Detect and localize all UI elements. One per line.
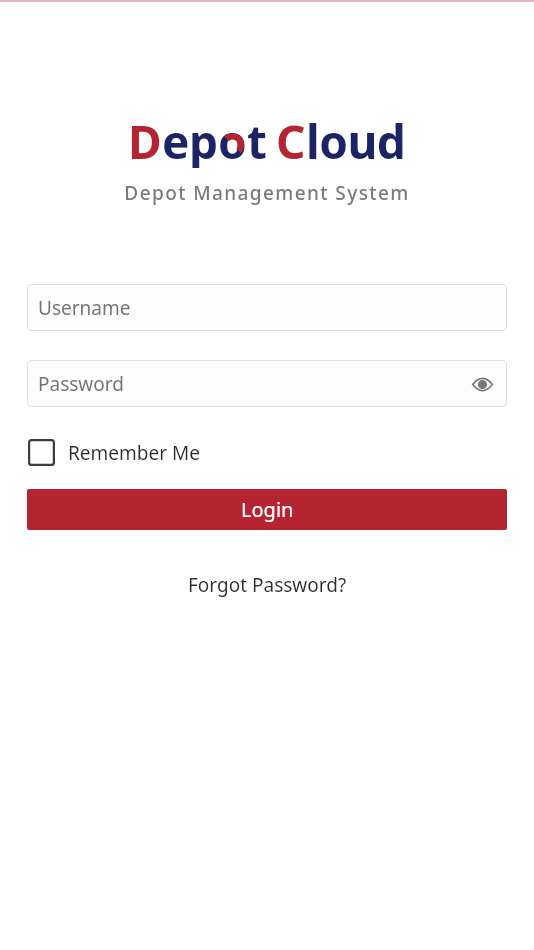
button[interactable]: Login	[27, 489, 507, 530]
staticText: Password	[38, 371, 124, 397]
staticText: D	[128, 110, 162, 168]
staticText: loud	[306, 110, 406, 168]
button[interactable]: Show password	[467, 369, 497, 399]
button[interactable]: Password	[27, 360, 507, 407]
staticText: Username	[38, 295, 131, 321]
staticText: t	[247, 110, 267, 168]
staticText: o	[218, 110, 247, 168]
staticText: C	[276, 110, 306, 168]
button[interactable]: Forgot Password?	[180, 568, 355, 602]
staticText: Depot Management System	[0, 180, 534, 206]
staticText: Login	[241, 496, 294, 523]
staticText: Forgot Password?	[188, 572, 347, 598]
button[interactable]: Username	[27, 284, 507, 331]
button[interactable]: Remember Me	[27, 437, 201, 468]
staticText: Remember Me	[68, 440, 200, 466]
staticText: ep	[162, 110, 218, 168]
